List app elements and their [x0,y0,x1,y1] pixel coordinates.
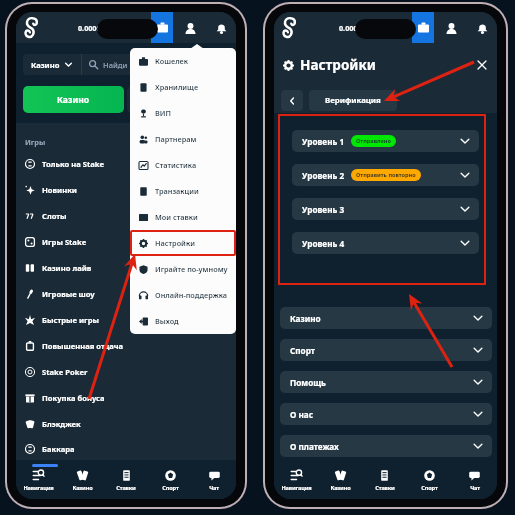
button[interactable]: Profile [181,19,199,37]
staticText: Транзакции [155,186,199,196]
staticText: Игровые шоу [42,289,95,299]
button[interactable]: Игры Stake [25,229,227,255]
button[interactable]: Статистика [130,152,236,178]
button[interactable]: Казино [280,307,492,329]
staticText: Покупка бонуса [42,393,105,403]
button[interactable]: Настройки [130,230,236,256]
staticText: ВИП [155,108,171,118]
button[interactable]: Спорт [127,86,229,113]
staticText: Настройки [300,56,376,74]
staticText: Блэкджек [42,419,81,429]
button[interactable]: Навигация [16,470,60,499]
button[interactable]: Уровень 3 [292,198,479,220]
staticText: Игры [25,137,46,147]
button[interactable]: Казино [318,470,362,499]
staticText: Казино [31,60,60,70]
button[interactable]: Stake home [281,16,296,39]
button[interactable]: Close [474,57,490,73]
button[interactable]: Уровень 2 [292,164,479,186]
button[interactable]: Казино [23,86,124,113]
button[interactable]: Кошелек [130,48,236,74]
button[interactable]: Back [281,90,303,111]
button[interactable]: Wallet [151,12,173,43]
staticText: Игры Stake [42,237,87,247]
button[interactable]: Stake Poker [25,359,227,385]
button[interactable]: Notifications [473,19,491,37]
staticText: Партнерам [155,134,197,144]
staticText: 0.0000 [339,23,362,33]
button[interactable]: Спорт [407,470,452,499]
button[interactable]: Хранилище [130,74,236,100]
button[interactable]: Игровые шоу [25,281,227,307]
button[interactable]: Онлайн-поддержка [130,282,236,308]
button[interactable]: Спорт [148,470,192,499]
staticText: Баккара [42,444,75,454]
button[interactable]: Повышенная отдача [25,333,227,359]
button[interactable]: Ставки [362,470,407,499]
button[interactable]: О платежах [280,435,492,457]
staticText: Ставки [375,484,395,492]
staticText: Слоты [42,211,67,221]
button[interactable]: Спорт [280,339,492,361]
button[interactable]: Помощь [280,371,492,393]
button[interactable]: Навигация [274,470,318,499]
staticText: Казино [57,94,90,106]
button[interactable]: Верификация [309,90,397,111]
staticText: Мои ставки [155,212,198,222]
staticText: Помощь [290,377,326,388]
staticText: Ставки [116,484,136,492]
button[interactable]: Notifications [212,19,230,37]
staticText: Уровень 1 [302,136,345,147]
staticText: Навигация [281,484,312,492]
button[interactable]: Только на Stake [25,151,227,177]
button[interactable]: Найди [82,54,229,75]
button[interactable]: Баккара [25,437,227,460]
staticText: Новинки [42,185,77,195]
button[interactable]: Ставки [104,470,148,499]
staticText: Верификация [325,95,381,106]
staticText: Спорт [162,484,179,492]
button[interactable]: О нас [280,403,492,425]
staticText: Отправить повторно [356,171,416,179]
button[interactable]: Мои ставки [130,204,236,230]
staticText: Хранилище [155,82,199,92]
button[interactable]: Быстрые игры [25,307,227,333]
button[interactable]: Новинки [25,177,227,203]
button[interactable]: Чат [452,470,497,499]
staticText: Быстрые игры [42,315,99,325]
staticText: Казино [330,484,351,492]
button[interactable]: Партнерам [130,126,236,152]
staticText: Чат [209,484,219,492]
button[interactable]: Profile [442,19,460,37]
staticText: Спорт [290,345,315,356]
button[interactable]: Слоты [25,203,227,229]
staticText: Играйте по-умному [155,264,228,274]
staticText: О платежах [290,441,339,452]
staticText: Уровень 4 [302,238,345,249]
button[interactable]: Уровень 4 [292,232,479,254]
staticText: Казино лайв [42,263,92,273]
staticText: Статистика [155,160,197,170]
staticText: Stake Poker [42,367,88,377]
staticText: Уровень 2 [302,170,345,181]
button[interactable]: Казино [23,54,81,75]
button[interactable]: Казино [60,470,104,499]
button[interactable]: Блэкджек [25,411,227,437]
staticText: Уровень 3 [302,204,345,215]
button[interactable]: Stake home [23,16,38,39]
button[interactable]: Чат [192,470,236,499]
staticText: Отправлено [356,137,391,145]
button[interactable]: Казино лайв [25,255,227,281]
button[interactable]: ВИП [130,100,236,126]
button[interactable]: Выход [130,308,236,334]
staticText: Казино [72,484,93,492]
button[interactable]: Играйте по-умному [130,256,236,282]
staticText: Казино [290,313,321,324]
button[interactable]: Уровень 1 [292,130,479,152]
staticText: Найди [103,60,128,70]
button[interactable]: Покупка бонуса [25,385,227,411]
button[interactable]: Транзакции [130,178,236,204]
staticText: Только на Stake [42,159,104,169]
button[interactable]: Wallet [412,12,434,43]
staticText: Выход [155,316,179,326]
